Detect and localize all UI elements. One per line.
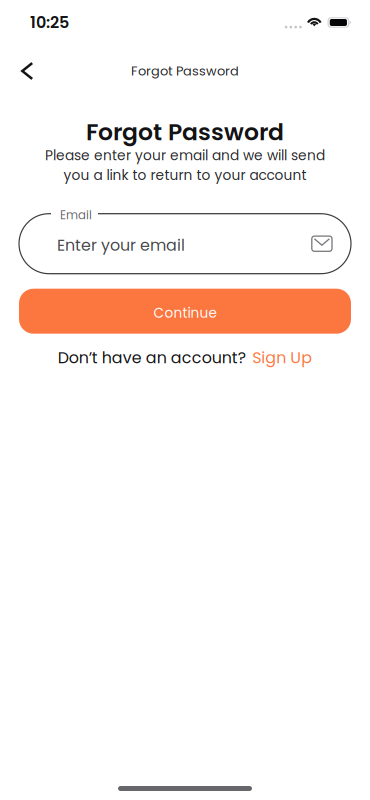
staticText: Email — [60, 207, 92, 223]
staticText: Enter your email — [57, 234, 185, 256]
staticText: Forgot Password — [86, 116, 284, 148]
staticText: Continue — [153, 303, 216, 322]
button[interactable]: Back — [0, 53, 47, 89]
staticText: you a link to return to your account — [63, 166, 306, 185]
staticText: Please enter your email and we will send — [45, 146, 325, 165]
staticText: Don’t have an account? — [58, 347, 246, 369]
button[interactable]: Sign Up — [252, 347, 312, 369]
button[interactable]: Continue — [19, 289, 351, 334]
staticText: 10:25 — [30, 11, 69, 34]
staticText: Forgot Password — [131, 62, 239, 80]
staticText: Sign Up — [252, 347, 312, 369]
